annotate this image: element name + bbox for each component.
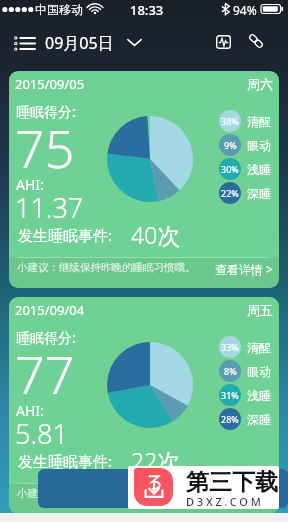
staticText: 小建议：继续保持昨晚的睡眠习惯哦。 — [17, 261, 196, 274]
button[interactable]: Link device — [242, 27, 270, 55]
staticText: AHI: — [16, 175, 44, 194]
staticText: 11.37 — [15, 189, 84, 226]
button[interactable]: Pick date — [120, 28, 148, 56]
staticText: 5.81 — [15, 415, 68, 452]
staticText: 75 — [15, 112, 75, 183]
staticText: 浅睡 — [247, 388, 271, 403]
staticText: 2015/09/05 — [15, 75, 85, 93]
staticText: 周六 — [247, 76, 273, 92]
staticText: 第三下载 — [186, 468, 278, 497]
staticText: 清醒 — [247, 114, 271, 129]
staticText: 22次 — [131, 445, 181, 476]
staticText: 浅睡 — [247, 162, 271, 177]
button[interactable]: Menu — [5, 26, 43, 60]
staticText: 周五 — [247, 302, 273, 318]
staticText: 22% — [221, 187, 239, 199]
staticText: 小建议：继续保持昨晚的睡眠习惯哦。 — [17, 487, 196, 500]
staticText: 38% — [221, 115, 239, 127]
staticText: 查看详情 > — [215, 487, 273, 503]
button[interactable]: 2015/09/04 — [9, 297, 279, 514]
staticText: 查看详情 > — [215, 261, 273, 277]
staticText: 深睡 — [247, 412, 271, 427]
button[interactable]: 2015/09/05 — [9, 71, 279, 288]
button[interactable]: Heart rate — [209, 28, 237, 56]
staticText: 发生睡眠事件: — [18, 225, 113, 245]
staticText: 77 — [15, 338, 75, 409]
staticText: 清醒 — [247, 340, 271, 355]
staticText: 18:33 — [130, 1, 164, 19]
staticText: 40次 — [131, 219, 181, 250]
staticText: 94% — [233, 2, 257, 18]
staticText: 睡眠得分: — [16, 102, 76, 121]
staticText: 31% — [221, 389, 239, 401]
staticText: D3XZ.COM — [186, 494, 264, 509]
staticText: AHI: — [16, 401, 44, 420]
staticText: 眼动 — [247, 138, 271, 153]
staticText: 30% — [221, 163, 239, 175]
staticText: 9% — [224, 139, 237, 151]
staticText: 8% — [224, 365, 237, 377]
staticText: 中国移动 — [35, 2, 83, 17]
staticText: 深睡 — [247, 186, 271, 201]
staticText: 2015/09/04 — [15, 301, 85, 319]
staticText: 发生睡眠事件: — [18, 451, 113, 471]
staticText: 眼动 — [247, 364, 271, 379]
staticText: 33% — [221, 341, 239, 353]
staticText: 睡眠得分: — [16, 328, 76, 347]
staticText: 09月05日 — [45, 32, 114, 54]
staticText: 28% — [221, 413, 239, 425]
